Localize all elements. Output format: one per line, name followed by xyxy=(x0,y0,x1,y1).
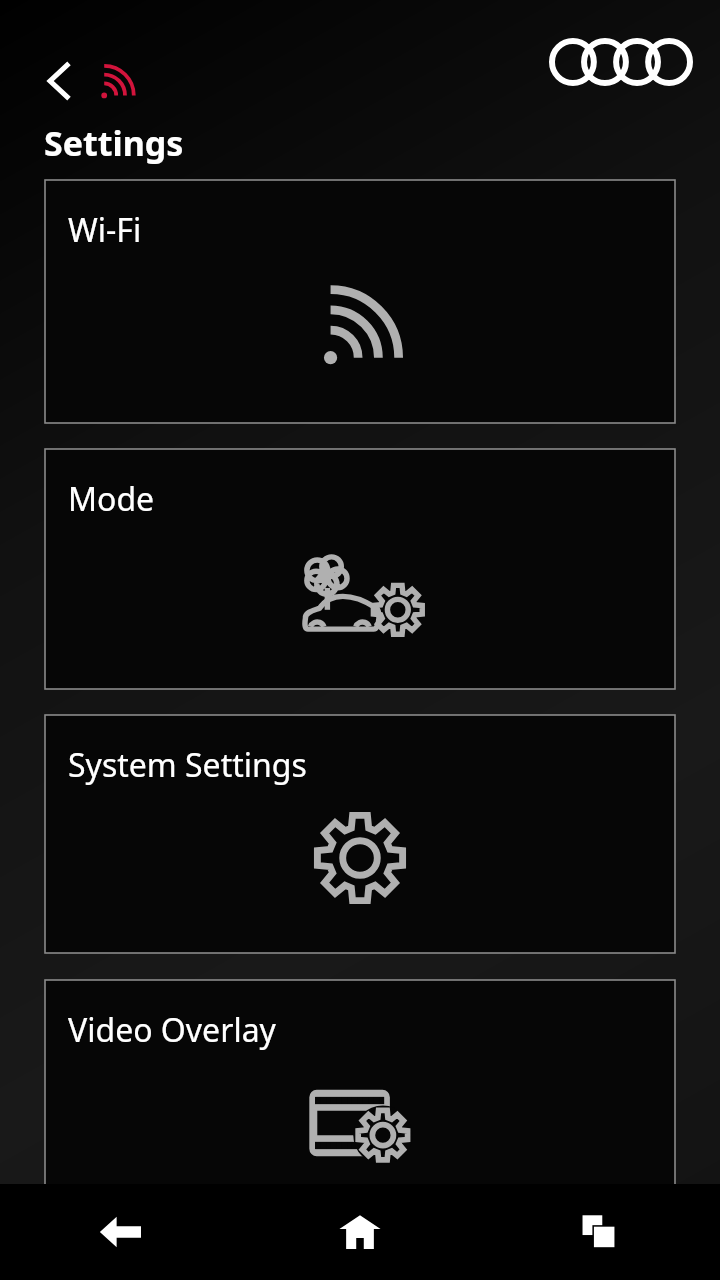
button[interactable]: Video Overlay xyxy=(45,980,675,1218)
button[interactable]: Back xyxy=(0,1184,240,1280)
button[interactable]: Mode xyxy=(45,449,675,689)
staticText: Wi-Fi xyxy=(68,208,142,252)
button[interactable]: Home xyxy=(240,1184,480,1280)
button[interactable]: Wi-Fi xyxy=(45,180,675,423)
button[interactable]: Recent apps xyxy=(480,1184,720,1280)
staticText: Mode xyxy=(68,477,155,521)
button[interactable]: Audi xyxy=(546,31,696,93)
button[interactable]: Back xyxy=(34,52,86,110)
button[interactable]: Connection status xyxy=(92,52,142,110)
button[interactable]: System Settings xyxy=(45,715,675,953)
staticText: Video Overlay xyxy=(68,1008,276,1052)
staticText: System Settings xyxy=(68,743,307,787)
staticText: Settings xyxy=(44,120,184,166)
